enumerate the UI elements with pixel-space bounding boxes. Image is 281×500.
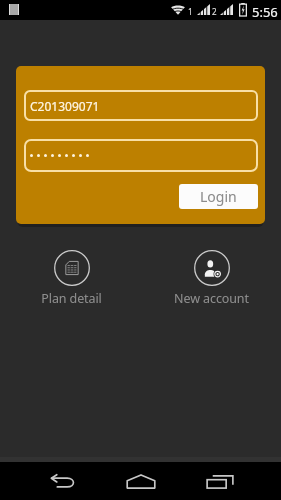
staticText: Login (200, 187, 237, 206)
button[interactable] (24, 139, 258, 172)
button[interactable]: Back (40, 462, 84, 500)
staticText: 1 (188, 6, 193, 17)
button[interactable]: Home (119, 462, 163, 500)
staticText: Plan detail (41, 290, 102, 307)
button[interactable]: Login (179, 184, 258, 209)
button[interactable]: New account (166, 250, 257, 307)
staticText: C201309071 (30, 98, 100, 114)
button[interactable]: Recent apps (198, 462, 242, 500)
staticText: New account (174, 290, 249, 307)
button[interactable]: C201309071 (24, 90, 258, 121)
staticText: 2 (212, 6, 217, 17)
staticText: 5:56 (252, 3, 278, 21)
button[interactable]: Plan detail (26, 250, 117, 307)
